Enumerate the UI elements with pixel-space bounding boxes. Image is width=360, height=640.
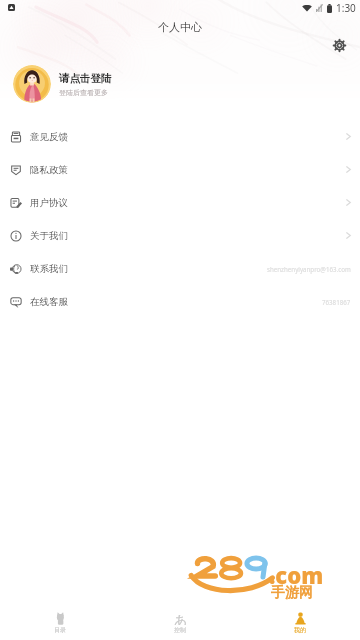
staticText: 我的 (294, 626, 306, 634)
staticText: 隐私政策 (30, 164, 68, 176)
button[interactable]: あ (120, 606, 240, 640)
staticText: あ (174, 612, 187, 625)
staticText: 76381867 (322, 298, 351, 306)
button[interactable]: 目录 (0, 606, 120, 640)
button[interactable]: 用户协议 (0, 186, 360, 219)
staticText: 1:30 (336, 1, 356, 15)
staticText: 目录 (54, 626, 66, 634)
button[interactable]: 在线客服 (0, 285, 360, 318)
staticText: shenzhenyiyanpro@163.com (267, 265, 351, 273)
staticText: 联系我们 (30, 263, 68, 275)
staticText: 关于我们 (30, 230, 68, 242)
staticText: 在线客服 (30, 296, 68, 308)
staticText: 意见反馈 (30, 131, 68, 143)
staticText: 控制 (174, 626, 186, 634)
staticText: .com (269, 560, 324, 590)
button[interactable]: 请点击登陆 (0, 41, 360, 109)
staticText: 请点击登陆 (59, 72, 112, 85)
staticText: 用户协议 (30, 197, 68, 209)
button[interactable]: 意见反馈 (0, 120, 360, 153)
button[interactable]: 我的 (240, 606, 360, 640)
button[interactable]: 关于我们 (0, 219, 360, 252)
button[interactable]: 隐私政策 (0, 153, 360, 186)
button[interactable]: 联系我们 (0, 252, 360, 285)
button[interactable]: Settings (327, 33, 351, 57)
staticText: 个人中心 (158, 20, 202, 34)
staticText: 手游网 (271, 584, 313, 602)
staticText: 登陆后查看更多 (59, 88, 108, 97)
